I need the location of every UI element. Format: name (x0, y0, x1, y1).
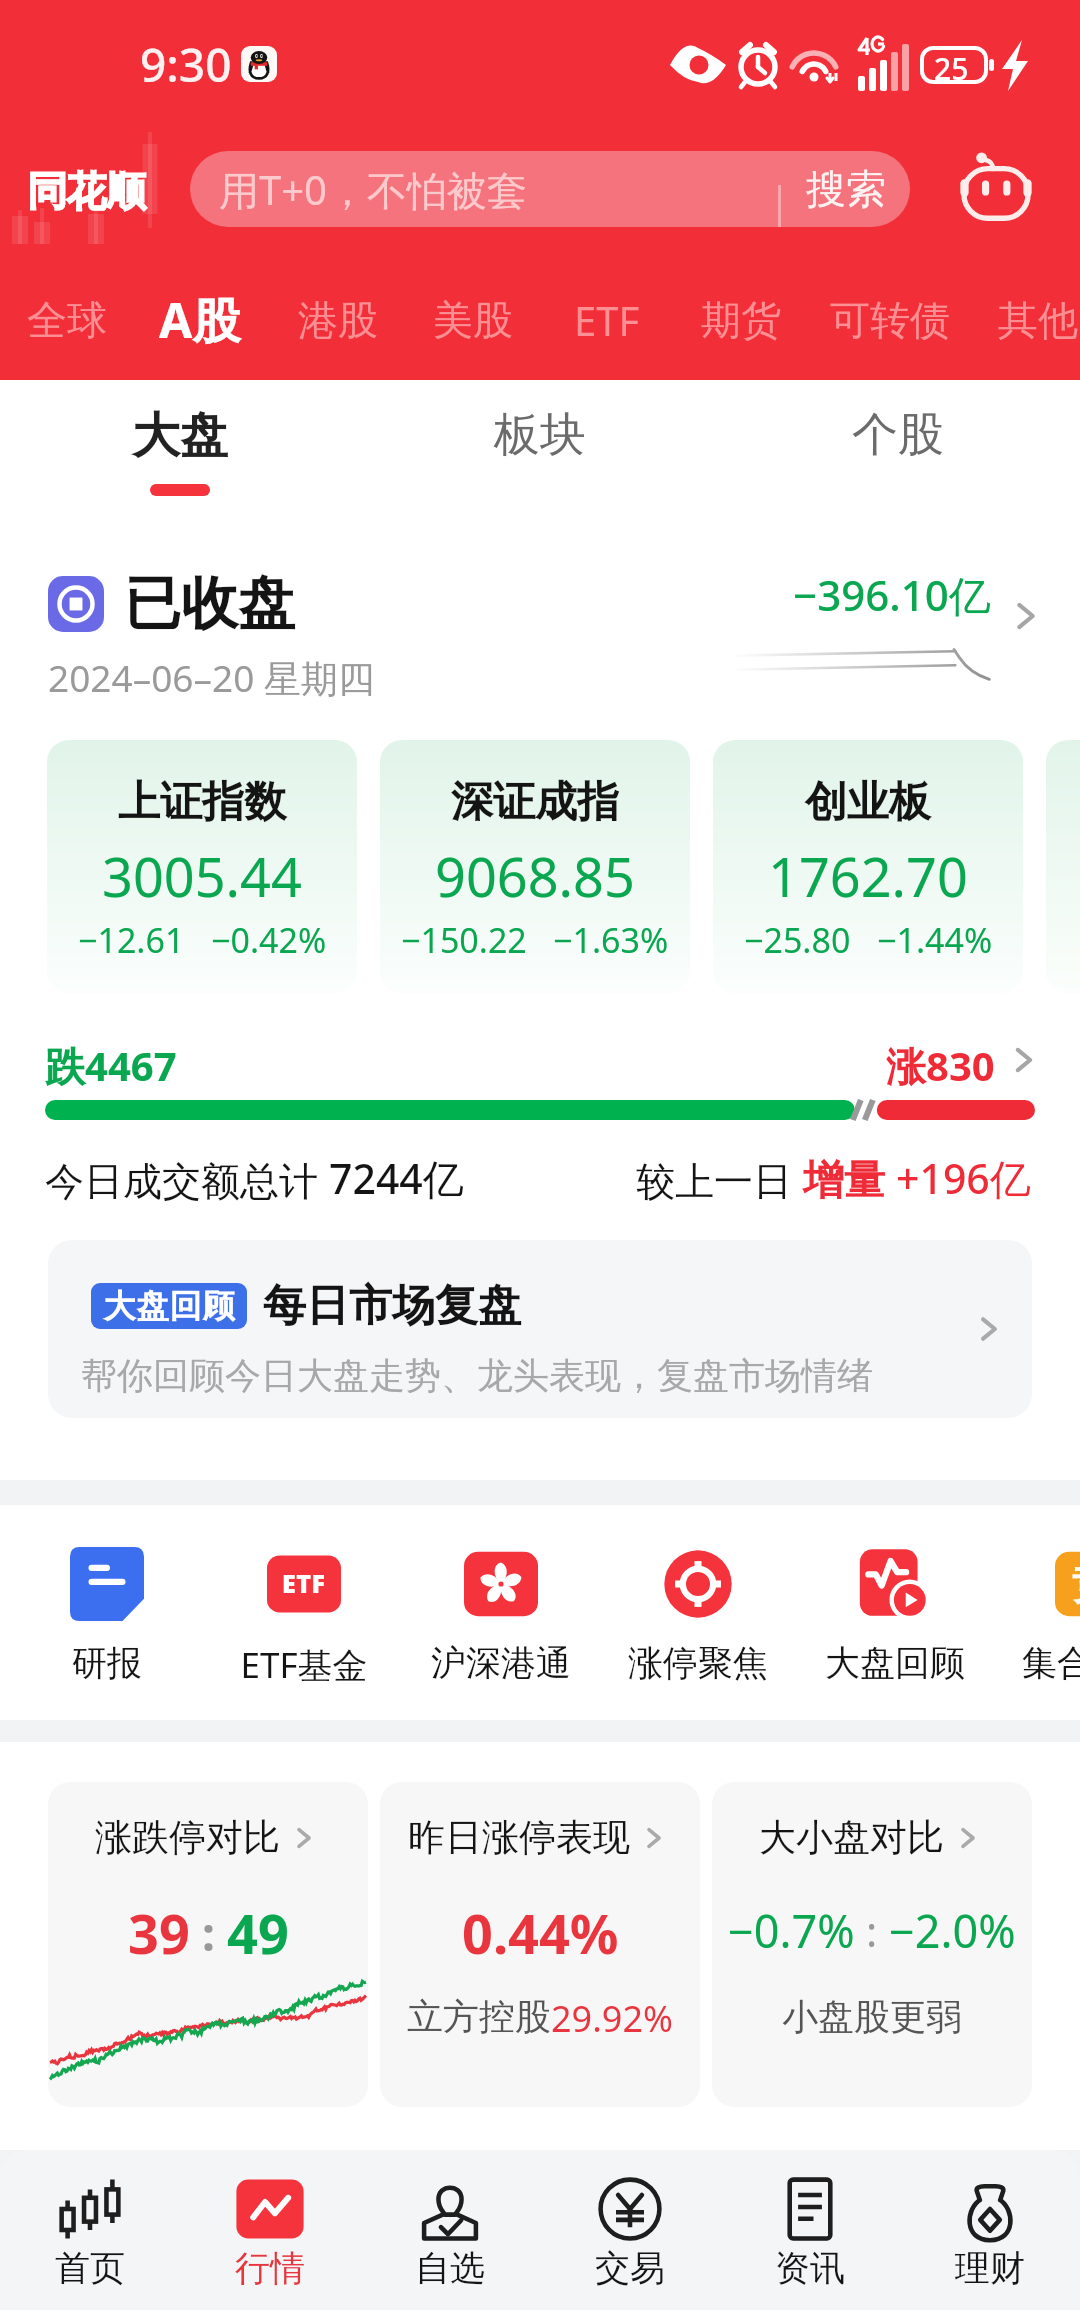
staticText: 涨停聚焦 (600, 1641, 796, 1685)
staticText: 3005.44 (102, 839, 302, 913)
button[interactable]: ETF (507, 268, 707, 372)
staticText: 小盘股更弱 (782, 1994, 962, 2039)
staticText: 2024–06–20 星期四 (48, 652, 375, 703)
button[interactable]: 昨日涨停表现 (380, 1782, 700, 2107)
staticText: 期货 (701, 295, 781, 345)
staticText: −396.10亿 (793, 566, 991, 623)
button[interactable]: 深证成指 (380, 740, 690, 993)
staticText: 昨日涨停表现 (408, 1814, 630, 1861)
staticText: 资讯 (775, 2246, 845, 2290)
staticText: 美股 (433, 295, 513, 345)
staticText: 沪深港通 (403, 1641, 599, 1685)
button[interactable]: 大小盘对比 (712, 1782, 1032, 2107)
staticText: 港股 (298, 295, 378, 345)
button[interactable]: AI 智能助手 (932, 130, 1046, 244)
staticText: 跌4467 (45, 1038, 177, 1093)
staticText: 39 (128, 1896, 190, 1970)
button[interactable]: 沪深港通 (403, 1505, 599, 1720)
staticText: 29.92% (551, 1994, 673, 2043)
button[interactable]: 理财 (900, 2150, 1080, 2310)
button[interactable]: 港股 (238, 268, 438, 372)
staticText: −12.61 (78, 917, 185, 963)
staticText: 板块 (494, 406, 586, 464)
staticText: 可转债 (830, 295, 950, 345)
button[interactable]: 资讯 (720, 2150, 900, 2310)
button[interactable]: 板块 (360, 380, 720, 505)
staticText: 个股 (852, 406, 944, 464)
staticText: 用T+0，不怕被套 (219, 162, 527, 217)
button[interactable]: 其他 (938, 268, 1080, 372)
staticText: 25 (934, 48, 969, 89)
button[interactable]: 大盘回顾 (797, 1505, 993, 1720)
button[interactable]: 研报 (9, 1505, 205, 1720)
staticText: 竞 (1072, 1559, 1080, 1609)
staticText: 首页 (55, 2246, 125, 2290)
button[interactable]: 自选 (360, 2150, 540, 2310)
staticText: 大盘 (132, 406, 228, 466)
staticText: ETF (282, 1566, 326, 1600)
staticText: 较上一日 (636, 1153, 803, 1206)
staticText: −0.42% (211, 917, 327, 963)
staticText: −1.44% (877, 917, 993, 963)
button[interactable]: 涨停聚焦 (600, 1505, 796, 1720)
staticText: 上证指数 (118, 776, 286, 829)
staticText: 深证成指 (451, 776, 619, 829)
staticText: 9:30 (140, 33, 232, 96)
staticText: 全球 (27, 295, 107, 345)
staticText: 理财 (955, 2246, 1025, 2290)
staticText: 增量 (803, 1150, 896, 1206)
button[interactable]: ETF (206, 1505, 402, 1720)
button[interactable]: 涨跌停对比 (48, 1782, 368, 2107)
button[interactable]: 行情 (180, 2150, 360, 2310)
button[interactable]: 全球 (0, 268, 167, 372)
button[interactable]: 可转债 (790, 268, 990, 372)
staticText: 大盘回顾 (103, 1286, 235, 1326)
button[interactable]: 首页 (0, 2150, 180, 2310)
staticText: 研报 (9, 1641, 205, 1685)
staticText: 帮你回顾今日大盘走势、龙头表现，复盘市场情绪 (81, 1353, 873, 1398)
staticText: 每日市场复盘 (263, 1279, 521, 1333)
staticText: 其他 (998, 295, 1078, 345)
button[interactable]: A股 (100, 268, 300, 372)
button[interactable]: 个股 (718, 380, 1078, 505)
button[interactable]: 大盘回顾 (48, 1240, 1032, 1418)
staticText: 7244亿 (329, 1150, 464, 1206)
staticText: 大盘回顾 (797, 1641, 993, 1685)
staticText: 涨830 (886, 1038, 995, 1093)
staticText: 今日成交额总计 (45, 1153, 329, 1206)
staticText: −2.0% (889, 1900, 1016, 1961)
staticText: : (855, 1902, 889, 1959)
button[interactable]: 期货 (641, 268, 841, 372)
button[interactable]: 创业板 (713, 740, 1023, 993)
button[interactable]: 美股 (373, 268, 573, 372)
button[interactable]: 大盘 (0, 380, 360, 505)
staticText: : (190, 1902, 227, 1965)
staticText: 大小盘对比 (759, 1814, 944, 1861)
staticText: ETF基金 (206, 1641, 402, 1689)
staticText: 搜索 (806, 164, 886, 214)
staticText: ETF (574, 293, 640, 347)
staticText: A股 (159, 287, 241, 353)
staticText: 涨跌停对比 (95, 1814, 280, 1861)
staticText: 1762.70 (768, 839, 968, 913)
button[interactable]: 上证指数 (47, 740, 357, 993)
button[interactable]: 竞 (994, 1505, 1080, 1720)
staticText: 49 (227, 1896, 289, 1970)
staticText: 交易 (595, 2246, 665, 2290)
staticText: 集合竞价 (994, 1641, 1080, 1685)
staticText: 行情 (235, 2246, 305, 2290)
staticText: 创业板 (805, 776, 931, 829)
staticText: 已收盘 (124, 568, 295, 640)
staticText: 自选 (415, 2246, 485, 2290)
button[interactable]: 交易 (540, 2150, 720, 2310)
staticText: 同花顺 (27, 166, 146, 216)
staticText: −0.7% (728, 1900, 855, 1961)
staticText: 9068.85 (435, 839, 635, 913)
staticText: −150.22 (401, 917, 527, 963)
button[interactable]: 用T+0，不怕被套 (190, 151, 910, 227)
staticText: +196亿 (896, 1150, 1031, 1206)
staticText: 0.44% (462, 1896, 619, 1970)
staticText: −1.63% (553, 917, 669, 963)
staticText: 立方控股 (407, 1994, 551, 2039)
staticText: −25.80 (744, 917, 851, 963)
